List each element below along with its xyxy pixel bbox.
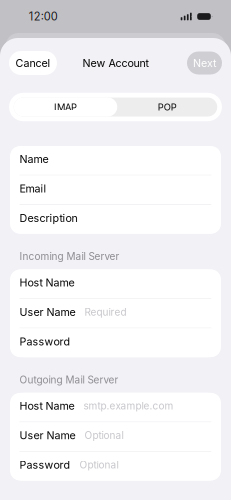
button[interactable]: Host Name (10, 393, 221, 422)
button[interactable]: IMAP (14, 97, 117, 116)
staticText: Name (19, 153, 48, 165)
button[interactable]: Host Name (10, 269, 221, 298)
staticText: IMAP (54, 101, 77, 113)
button[interactable]: Cancel (9, 51, 57, 75)
staticText: New Account (82, 56, 148, 69)
staticText: Host Name (19, 399, 74, 412)
staticText: Password (19, 458, 70, 471)
staticText: Email (19, 182, 46, 195)
button[interactable]: User Name (10, 422, 221, 451)
staticText: Incoming Mail Server (19, 250, 119, 262)
button[interactable]: Name (10, 146, 221, 175)
button[interactable]: POP (117, 97, 217, 116)
button[interactable]: User Name (10, 299, 221, 328)
staticText: Password (19, 335, 70, 348)
staticText: Outgoing Mail Server (19, 374, 118, 386)
staticText: smtp.example.com (83, 400, 173, 412)
staticText: Optional (84, 429, 123, 441)
staticText: Cancel (15, 56, 50, 69)
staticText: Next (193, 56, 216, 69)
button[interactable]: Next (187, 51, 222, 74)
staticText: POP (158, 101, 177, 113)
button[interactable]: Description (10, 205, 221, 234)
staticText: Host Name (19, 276, 74, 289)
staticText: Description (19, 212, 77, 224)
button[interactable]: Password (10, 452, 221, 481)
button[interactable]: Password (10, 328, 221, 357)
button[interactable]: Email (10, 175, 221, 204)
staticText: User Name (19, 305, 75, 318)
staticText: User Name (19, 429, 75, 442)
staticText: Required (84, 306, 126, 318)
staticText: 12:00 (29, 10, 58, 23)
staticText: Optional (79, 459, 118, 471)
